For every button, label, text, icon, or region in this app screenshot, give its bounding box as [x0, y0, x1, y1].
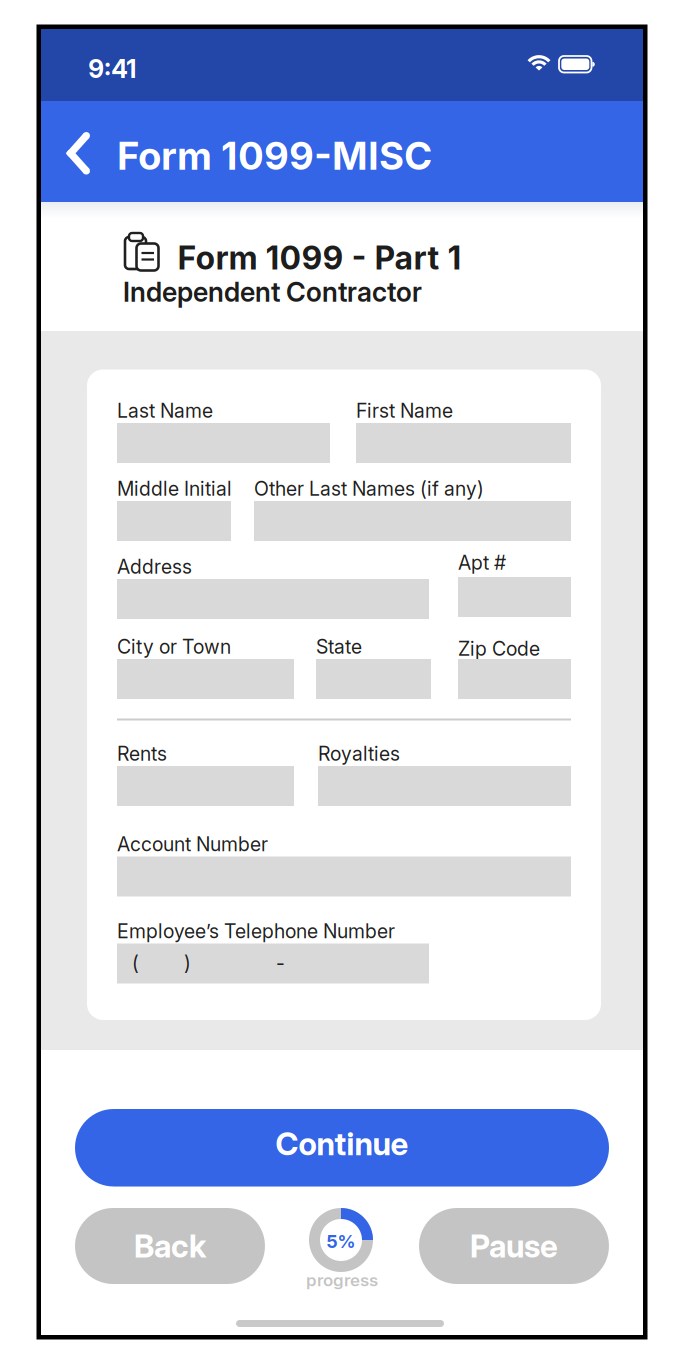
button[interactable]: Back	[75, 1208, 265, 1284]
staticText: Zip Code	[458, 637, 540, 660]
staticText: Account Number	[117, 832, 268, 856]
staticText: Form 1099 - Part 1	[177, 238, 461, 277]
button[interactable]: Pause	[419, 1208, 609, 1284]
staticText: Other Last Names (if any)	[254, 477, 484, 500]
staticText: Form 1099-MISC	[117, 133, 432, 179]
staticText: (	[132, 951, 139, 975]
staticText: State	[316, 635, 362, 658]
staticText: Middle Initial	[117, 477, 232, 500]
staticText: First Name	[356, 399, 453, 422]
button[interactable]: Employee's Telephone Number	[117, 943, 429, 983]
staticText: Royalties	[318, 742, 400, 765]
staticText: 5%	[326, 1231, 355, 1252]
staticText: Apt #	[458, 551, 506, 574]
staticText: Last Name	[117, 399, 213, 422]
staticText: Pause	[470, 1227, 558, 1265]
staticText: Continue	[275, 1125, 408, 1163]
staticText: Address	[117, 555, 192, 578]
staticText: Rents	[117, 742, 167, 765]
staticText: Back	[134, 1227, 206, 1265]
staticText: Employee’s Telephone Number	[117, 919, 395, 943]
staticText: City or Town	[117, 635, 231, 658]
button[interactable]: Back	[56, 126, 104, 180]
staticText: -	[276, 951, 285, 975]
staticText: )	[184, 951, 191, 975]
staticText: Independent Contractor	[123, 276, 422, 308]
button[interactable]: Continue	[75, 1109, 609, 1186]
staticText: progress	[306, 1270, 378, 1290]
staticText: 9:41	[88, 54, 136, 84]
